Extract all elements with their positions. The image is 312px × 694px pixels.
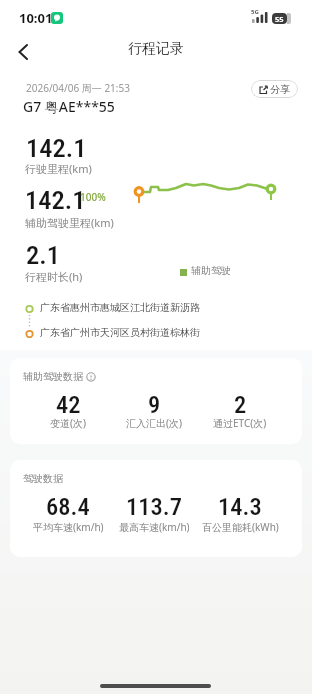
staticText: 100% — [80, 190, 106, 204]
staticText: 变道(次) — [50, 416, 86, 430]
staticText: 2026/04/06 周一 21:53 — [26, 81, 130, 95]
staticText: 辅助驾驶数据 — [23, 370, 83, 383]
staticText: 分享 — [270, 83, 290, 96]
staticText: 10:01 — [19, 9, 53, 27]
staticText: 辅助驾驶 — [191, 264, 231, 277]
staticText: 广东省惠州市惠城区江北街道新沥路 — [40, 301, 200, 314]
staticText: 辅助驾驶里程(km) — [25, 215, 114, 230]
button[interactable]: 辅助驾驶数据 — [10, 358, 302, 444]
staticText: 142.1 — [26, 132, 87, 163]
staticText: 2.1 — [26, 239, 60, 270]
staticText: 9 — [148, 390, 161, 419]
staticText: 2 — [234, 390, 247, 419]
staticText: 行程时长(h) — [25, 269, 83, 284]
staticText: 55 — [275, 14, 284, 24]
staticText: 行程记录 — [128, 40, 184, 58]
staticText: 42 — [56, 390, 81, 419]
button[interactable]: 分享 — [251, 80, 298, 98]
staticText: 平均车速(km/h) — [33, 520, 104, 534]
staticText: 通过ETC(次) — [213, 416, 267, 430]
button[interactable]: 驾驶数据 — [10, 460, 302, 557]
staticText: 汇入汇出(次) — [126, 416, 182, 430]
staticText: 142.1 — [25, 184, 86, 215]
staticText: 广东省广州市天河区员村街道棕林街 — [40, 326, 200, 339]
staticText: 行驶里程(km) — [25, 161, 92, 176]
staticText: 14.3 — [218, 492, 262, 521]
staticText: 最高车速(km/h) — [119, 520, 190, 534]
button[interactable] — [8, 38, 38, 64]
staticText: 驾驶数据 — [23, 472, 63, 485]
staticText: 68.4 — [46, 492, 90, 521]
staticText: 5G — [251, 8, 259, 16]
staticText: 百公里能耗(kWh) — [202, 520, 279, 534]
staticText: 113.7 — [126, 492, 182, 521]
staticText: G7 粤AE***55 — [23, 97, 115, 116]
